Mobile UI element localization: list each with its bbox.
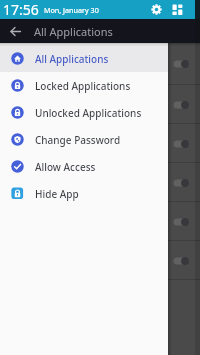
staticText: Change Password <box>35 133 121 147</box>
button[interactable] <box>6 22 24 40</box>
button[interactable] <box>0 202 200 241</box>
button[interactable]: Unlocked Applications <box>0 99 168 126</box>
button[interactable] <box>0 241 200 280</box>
button[interactable] <box>150 3 163 16</box>
button[interactable] <box>0 85 200 124</box>
button[interactable]: All Applications <box>0 45 168 72</box>
button[interactable] <box>171 3 184 16</box>
button[interactable] <box>0 43 200 85</box>
button[interactable]: Hide App <box>0 180 168 207</box>
staticText: Mon, January 30 <box>44 5 99 15</box>
staticText: All Applications <box>35 52 109 66</box>
staticText: All Applications <box>34 24 113 39</box>
staticText: Hide App <box>35 187 79 201</box>
staticText: Unlocked Applications <box>35 106 142 120</box>
button[interactable] <box>0 124 200 163</box>
button[interactable]: Locked Applications <box>0 72 168 99</box>
staticText: 17:56 <box>3 0 39 19</box>
button[interactable]: Allow Access <box>0 153 168 180</box>
staticText: Locked Applications <box>35 79 131 93</box>
staticText: Allow Access <box>35 160 96 174</box>
button[interactable]: Change Password <box>0 126 168 153</box>
button[interactable] <box>0 163 200 202</box>
